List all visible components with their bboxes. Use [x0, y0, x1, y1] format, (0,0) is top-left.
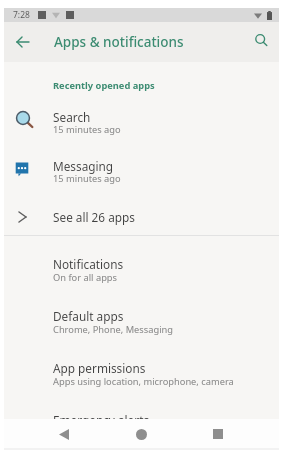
button[interactable]: Search settings [249, 28, 275, 54]
staticText: Chrome, Phone, Messaging [53, 323, 174, 336]
button[interactable]: Notifications [4, 248, 279, 300]
staticText: Default apps [53, 308, 124, 324]
staticText: Get alerts [53, 427, 96, 440]
staticText: Apps using location, microphone, camera [53, 375, 234, 388]
button[interactable]: App permissions [4, 352, 279, 404]
staticText: App permissions [53, 360, 146, 376]
staticText: Notifications [53, 256, 124, 272]
button[interactable]: Recent apps [206, 422, 230, 446]
button[interactable]: Navigate up [10, 29, 36, 55]
staticText: 15 minutes ago [53, 123, 121, 136]
button[interactable]: Messaging [4, 150, 279, 194]
staticText: Recently opened apps [53, 79, 155, 92]
button[interactable]: Search [4, 101, 279, 145]
button[interactable]: Back [52, 422, 76, 446]
button[interactable]: Home [129, 422, 153, 446]
staticText: On for all apps [53, 271, 118, 284]
button[interactable]: Emergency alerts [4, 404, 279, 450]
button[interactable]: Default apps [4, 300, 279, 352]
staticText: Messaging [53, 158, 114, 174]
staticText: Apps & notifications [54, 33, 184, 51]
button[interactable]: See all 26 apps [4, 200, 279, 234]
staticText: 7:28 [13, 9, 30, 21]
staticText: See all 26 apps [53, 209, 135, 225]
staticText: 15 minutes ago [53, 172, 121, 185]
staticText: Search [53, 109, 91, 125]
staticText: Emergency alerts [53, 412, 150, 428]
